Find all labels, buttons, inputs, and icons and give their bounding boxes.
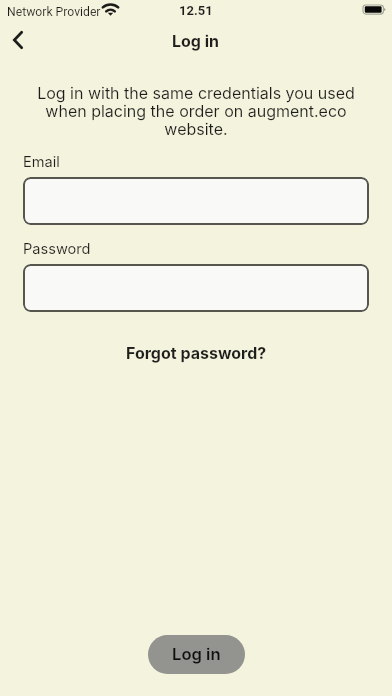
staticText: Log in [172, 644, 221, 664]
staticText: Forgot password? [126, 343, 267, 362]
button[interactable] [23, 177, 369, 225]
staticText: Password [23, 240, 91, 258]
staticText: Network Provider [7, 5, 101, 19]
staticText: Email [23, 153, 60, 171]
button[interactable] [23, 264, 369, 312]
button[interactable]: Back [0, 22, 36, 58]
staticText: Log in with the same credentials you use… [16, 83, 376, 138]
staticText: 12.51 [179, 3, 213, 18]
button[interactable]: Forgot password? [114, 339, 279, 366]
staticText: Log in [172, 31, 220, 50]
button[interactable]: Log in [148, 635, 245, 674]
